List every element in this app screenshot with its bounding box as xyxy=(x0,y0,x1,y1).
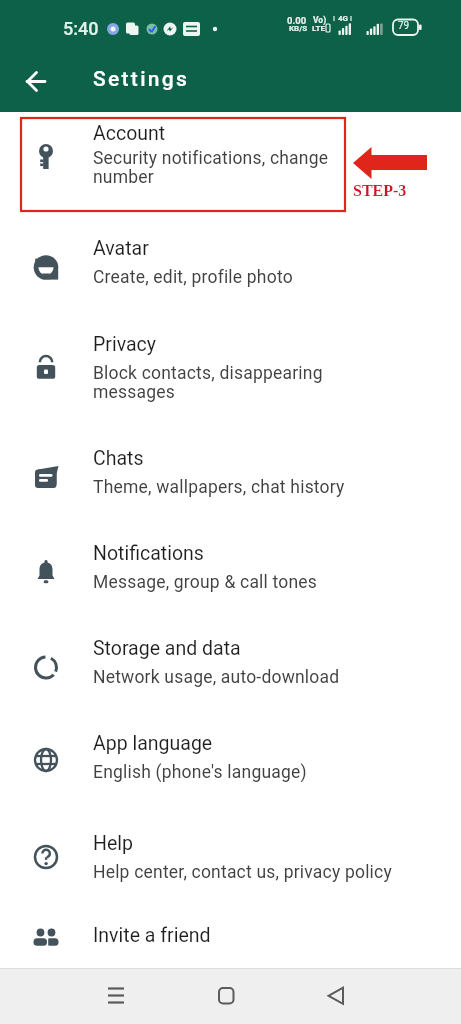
staticText: Network usage, auto-download xyxy=(93,667,340,688)
staticText: Account xyxy=(93,122,166,145)
staticText: App language xyxy=(93,732,213,755)
staticText: Help center, contact us, privacy policy xyxy=(93,862,392,883)
staticText: KB/S xyxy=(289,24,308,33)
button[interactable]: Storage and data xyxy=(0,627,461,722)
staticText: Block contacts, disappearing messages xyxy=(93,363,323,402)
staticText: Chats xyxy=(93,447,144,470)
staticText: 4G xyxy=(338,14,349,23)
staticText: Privacy xyxy=(93,333,156,356)
button[interactable] xyxy=(316,976,356,1016)
staticText: Settings xyxy=(93,67,190,92)
staticText: Avatar xyxy=(93,237,149,260)
button[interactable]: Invite a friend xyxy=(0,914,461,968)
staticText: Notifications xyxy=(93,542,204,565)
staticText: Vo) xyxy=(313,15,327,25)
staticText: Security notifications, change number xyxy=(93,148,329,187)
button[interactable] xyxy=(96,976,136,1016)
button[interactable]: App language xyxy=(0,722,461,822)
staticText: Help xyxy=(93,832,133,855)
button[interactable] xyxy=(206,976,246,1016)
button[interactable]: Help xyxy=(0,822,461,914)
button[interactable]: Privacy xyxy=(0,323,461,437)
staticText: 5:40 xyxy=(63,18,99,39)
button[interactable]: Account xyxy=(0,112,461,227)
staticText: Create, edit, profile photo xyxy=(93,267,293,288)
button[interactable]: Chats xyxy=(0,437,461,532)
staticText: 79 xyxy=(398,20,410,32)
staticText: English (phone's language) xyxy=(93,762,307,783)
button[interactable]: Avatar xyxy=(0,227,461,323)
button[interactable]: Notifications xyxy=(0,532,461,627)
staticText: STEP-3 xyxy=(353,182,407,200)
staticText: Theme, wallpapers, chat history xyxy=(93,477,345,498)
button[interactable] xyxy=(17,62,55,100)
staticText: Storage and data xyxy=(93,637,241,660)
staticText: 0.00 xyxy=(287,15,307,26)
staticText: Message, group & call tones xyxy=(93,572,318,593)
staticText: LTE xyxy=(312,24,325,33)
staticText: Invite a friend xyxy=(93,924,211,947)
